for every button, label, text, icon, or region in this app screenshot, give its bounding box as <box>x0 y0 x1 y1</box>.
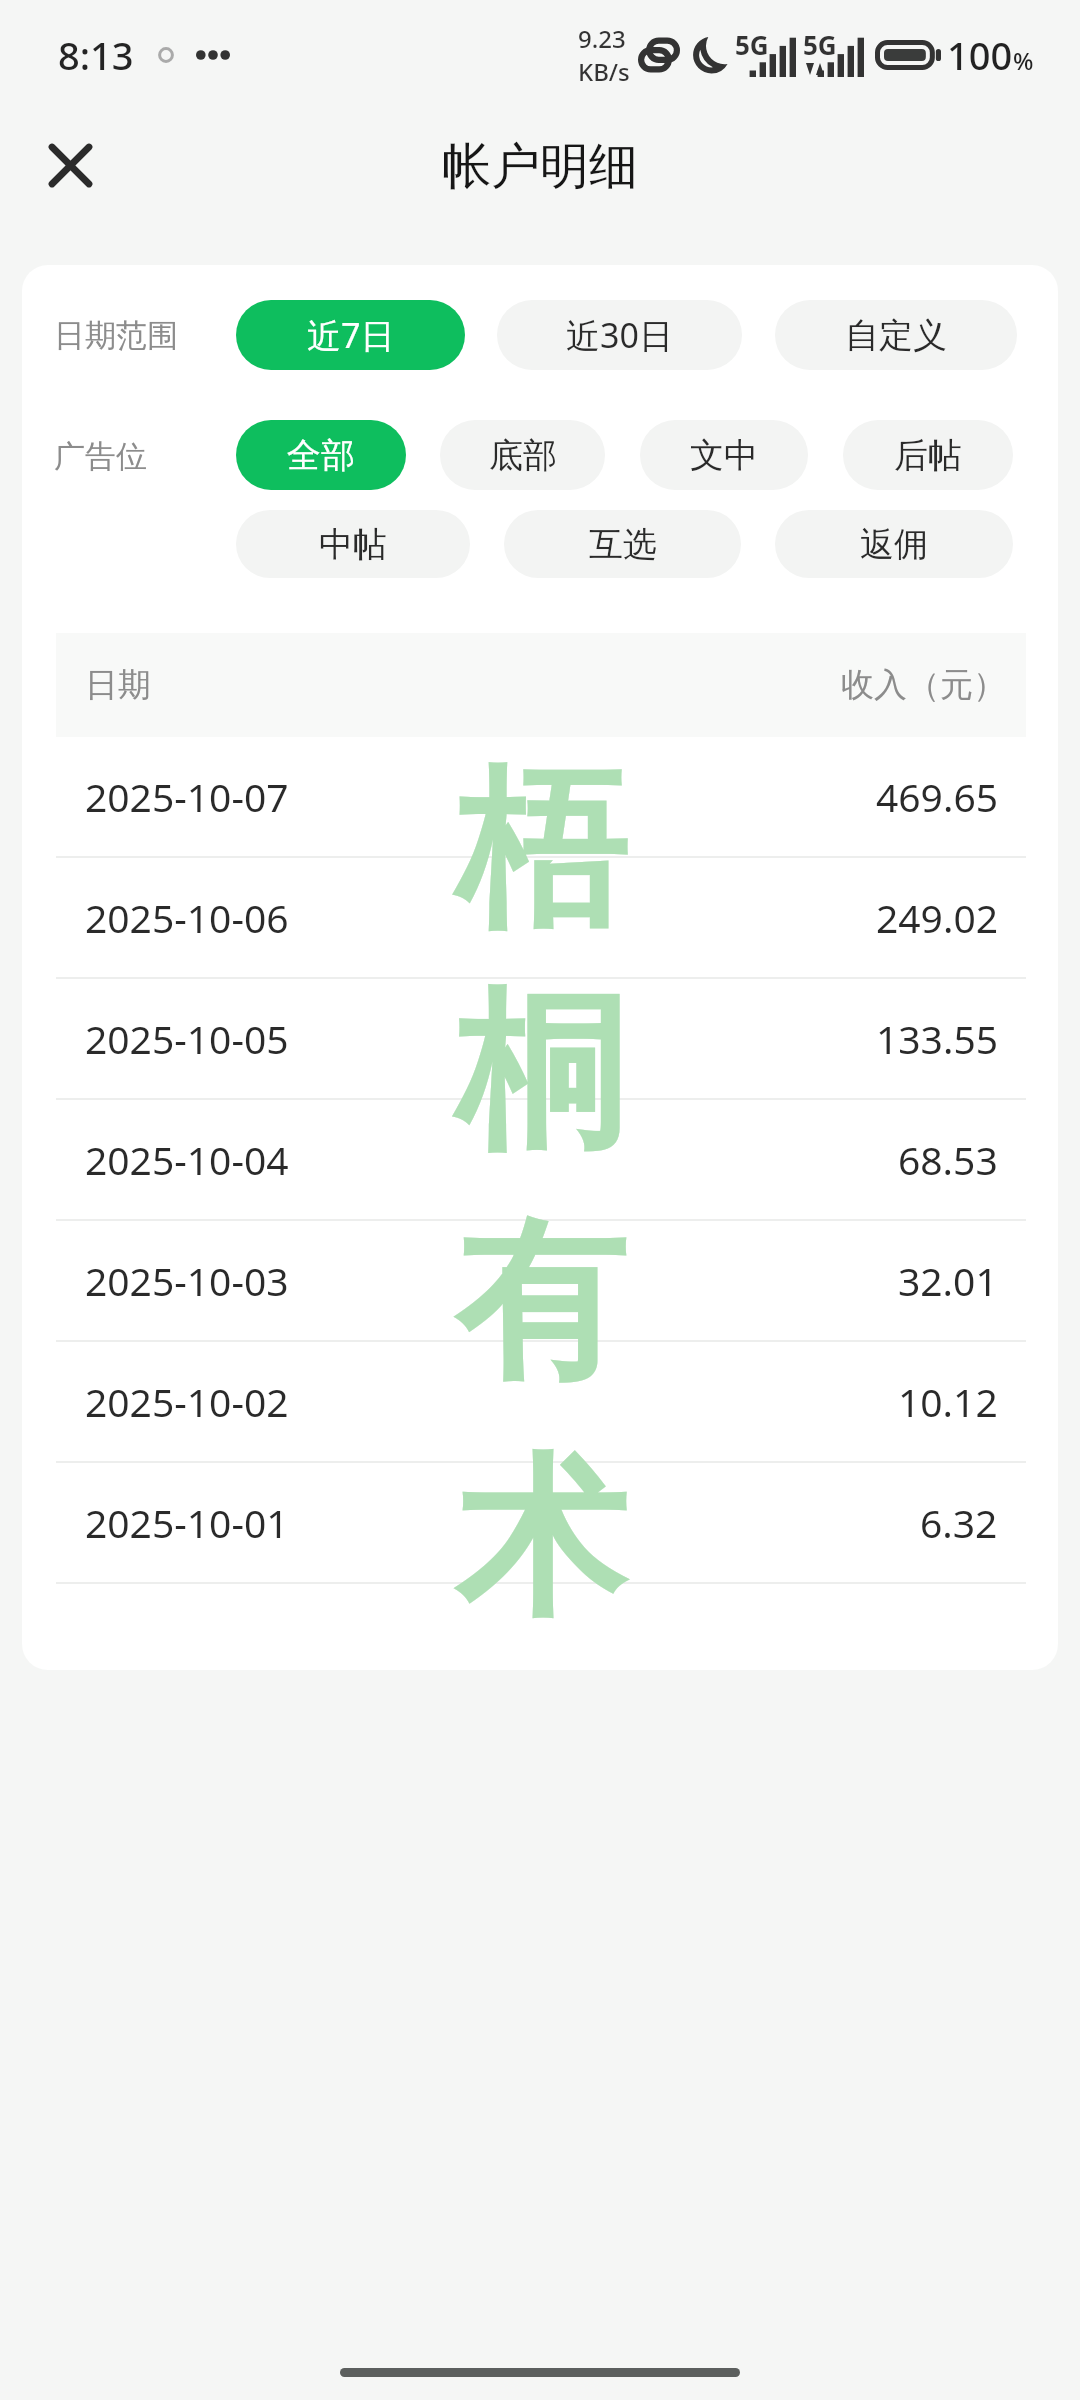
staticText: 6.32 <box>920 1496 998 1549</box>
staticText: 2025-10-01 <box>85 1496 289 1549</box>
button[interactable]: 底部 <box>440 420 605 490</box>
button[interactable]: 2025-10-06 <box>22 858 1058 977</box>
staticText: 后帖 <box>894 434 962 477</box>
staticText: 术 <box>455 1432 626 1647</box>
staticText: 9.23 <box>578 22 626 55</box>
button[interactable]: 文中 <box>640 420 808 490</box>
staticText: 5G <box>803 27 837 62</box>
staticText: 68.53 <box>898 1133 998 1186</box>
button[interactable]: 互选 <box>504 510 741 578</box>
button[interactable]: 全部 <box>236 420 406 490</box>
staticText: % <box>1013 44 1034 77</box>
staticText: 桐 <box>455 965 626 1180</box>
button[interactable]: 后帖 <box>843 420 1013 490</box>
button[interactable]: 2025-10-03 <box>22 1221 1058 1340</box>
staticText: 帐户明细 <box>442 136 638 198</box>
button[interactable]: 2025-10-07 <box>22 737 1058 856</box>
staticText: 2025-10-03 <box>85 1254 289 1307</box>
staticText: 2025-10-02 <box>85 1375 289 1428</box>
button[interactable]: 近7日 <box>236 300 465 370</box>
button[interactable]: 自定义 <box>775 300 1017 370</box>
staticText: 梧 <box>455 743 626 958</box>
staticText: 32.01 <box>898 1254 998 1307</box>
staticText: 日期范围 <box>54 316 178 355</box>
button[interactable]: 2025-10-05 <box>22 979 1058 1098</box>
staticText: 100 <box>947 29 1013 81</box>
staticText: 5G <box>735 27 769 62</box>
button[interactable]: 2025-10-02 <box>22 1342 1058 1461</box>
staticText: 近30日 <box>566 312 673 358</box>
staticText: 2025-10-05 <box>85 1012 289 1065</box>
staticText: 469.65 <box>876 770 998 823</box>
button[interactable]: 近30日 <box>497 300 742 370</box>
staticText: 2025-10-04 <box>85 1133 289 1186</box>
button[interactable]: 2025-10-04 <box>22 1100 1058 1219</box>
staticText: 2025-10-06 <box>85 891 289 944</box>
staticText: 自定义 <box>845 314 947 357</box>
staticText: 近7日 <box>307 312 395 358</box>
staticText: 249.02 <box>876 891 998 944</box>
staticText: 有 <box>455 1196 626 1411</box>
staticText: 133.55 <box>876 1012 998 1065</box>
staticText: KB/s <box>578 55 630 88</box>
staticText: 互选 <box>589 523 657 566</box>
staticText: 文中 <box>690 434 758 477</box>
button[interactable]: 返佣 <box>775 510 1013 578</box>
staticText: 中帖 <box>319 523 387 566</box>
button[interactable]: 2025-10-01 <box>22 1463 1058 1582</box>
staticText: 收入（元） <box>841 664 1006 706</box>
staticText: 全部 <box>287 434 355 477</box>
button[interactable]: 中帖 <box>236 510 470 578</box>
staticText: 10.12 <box>898 1375 998 1428</box>
staticText: 2025-10-07 <box>85 770 289 823</box>
button[interactable]: Close <box>30 125 110 205</box>
staticText: 返佣 <box>860 523 928 566</box>
staticText: 日期 <box>85 664 151 706</box>
staticText: 广告位 <box>54 437 147 476</box>
staticText: 8:13 <box>58 29 134 81</box>
staticText: 底部 <box>489 434 557 477</box>
